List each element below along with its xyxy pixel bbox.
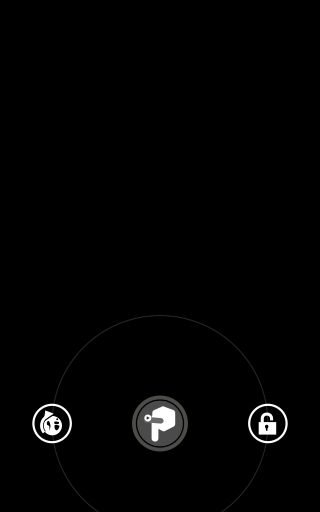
button[interactable]: Open app	[129, 392, 191, 454]
button[interactable]: Unlock	[246, 401, 290, 445]
button[interactable]: Network	[30, 401, 74, 445]
